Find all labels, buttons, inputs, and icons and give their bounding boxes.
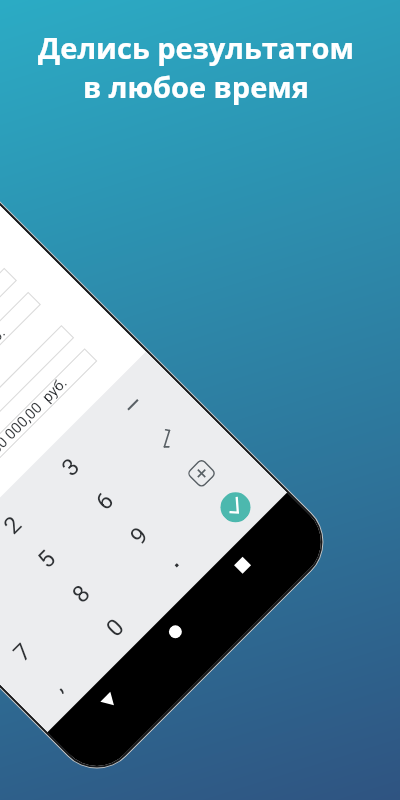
button[interactable]: Домой xyxy=(166,623,185,641)
staticText: 7 xyxy=(8,637,37,667)
button[interactable]: Готово xyxy=(214,486,257,528)
button[interactable]: , xyxy=(26,656,86,715)
staticText: 5 xyxy=(32,544,61,574)
button[interactable]: Недавние xyxy=(234,557,251,574)
staticText: в любое время xyxy=(83,67,309,106)
staticText: 1 000,00 руб. xyxy=(0,323,8,401)
button[interactable]: 6 xyxy=(75,471,134,531)
button[interactable]: Минус xyxy=(127,399,139,410)
staticText: 50 000,00 руб. xyxy=(0,374,70,457)
staticText: 2 xyxy=(0,510,28,540)
button[interactable]: 3 xyxy=(41,437,100,497)
button[interactable]: 9 xyxy=(110,506,169,565)
button[interactable]: 7 xyxy=(0,623,52,682)
staticText: 9 xyxy=(124,521,154,550)
staticText: Делись результатом xyxy=(38,28,354,67)
button[interactable]: 8 xyxy=(52,564,111,623)
button[interactable]: 2 xyxy=(0,495,42,555)
staticText: 0 xyxy=(100,613,130,642)
staticText: , xyxy=(45,673,68,697)
staticText: 6 xyxy=(90,486,119,516)
button[interactable]: Точка xyxy=(175,563,179,567)
staticText: 3 xyxy=(56,452,86,482)
button[interactable]: Плюс xyxy=(186,458,217,489)
button[interactable]: 4 xyxy=(0,588,18,647)
button[interactable]: 0 xyxy=(86,598,145,657)
button[interactable]: Назад xyxy=(95,687,121,712)
staticText: 8 xyxy=(66,579,96,608)
button[interactable]: 5 xyxy=(17,529,76,589)
